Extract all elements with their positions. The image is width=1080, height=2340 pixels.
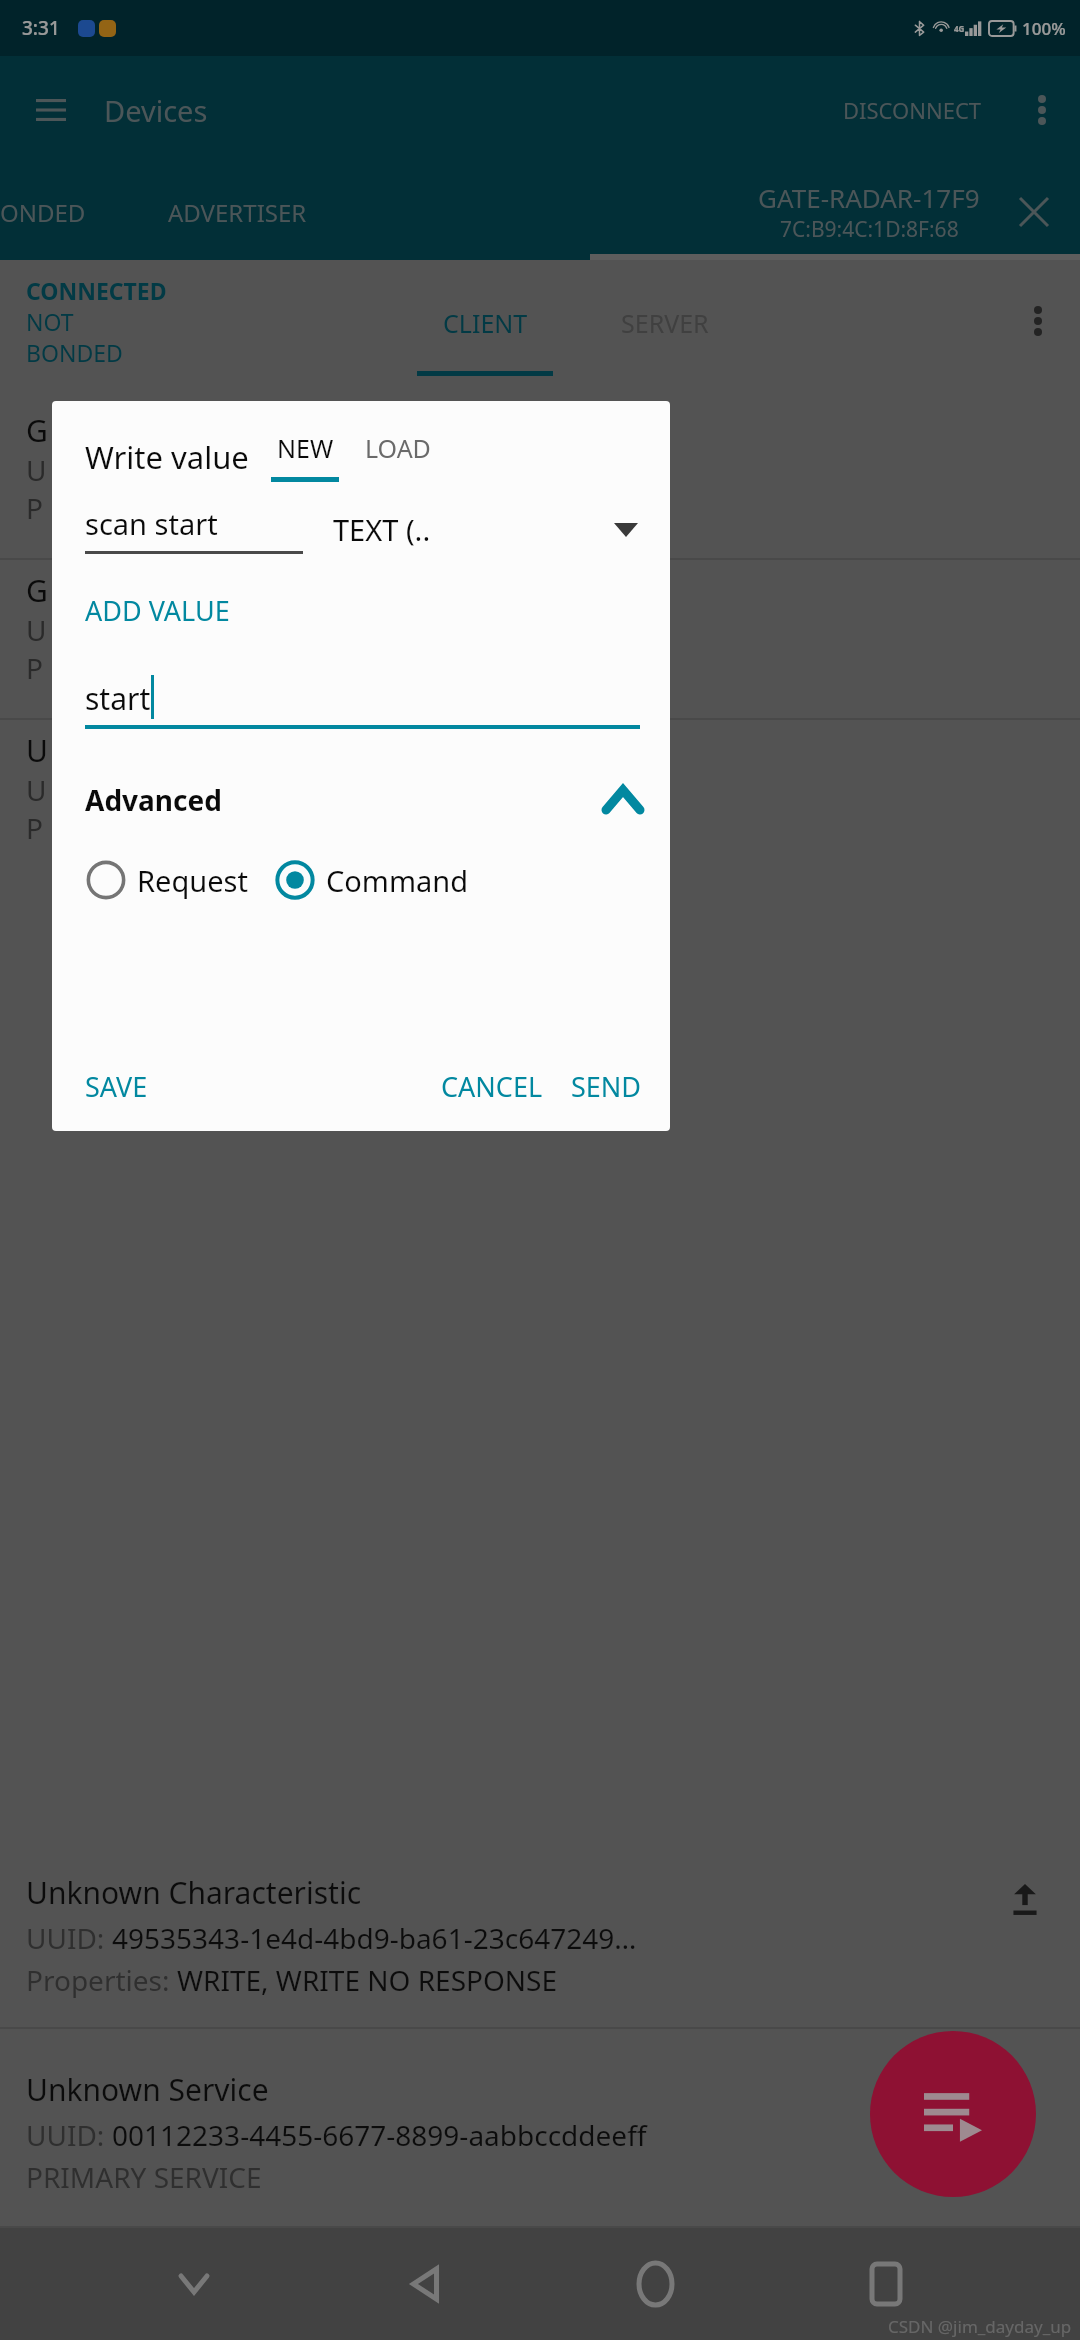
staticText: Request	[137, 861, 248, 900]
button[interactable]: CANCEL	[441, 1068, 543, 1105]
staticText: CONNECTED	[26, 275, 167, 306]
button[interactable]: Request	[85, 859, 248, 901]
staticText: PRIMARY SERVICE	[26, 2158, 262, 2196]
staticText: Advanced	[85, 781, 222, 819]
staticText: UUID:	[26, 2116, 112, 2154]
staticText: 4G	[954, 23, 965, 34]
staticText: Unknown Characteristic	[26, 1872, 362, 1913]
button[interactable]: Open navigation menu	[22, 81, 80, 139]
staticText: 00112233-4455-6677-8899-aabbccddeeff	[112, 2116, 647, 2154]
staticText: NOT	[26, 306, 74, 337]
staticText: U	[26, 451, 47, 489]
button[interactable]: TEXT (..	[333, 510, 642, 549]
staticText: scan start	[85, 504, 218, 543]
staticText: U	[26, 611, 47, 649]
staticText: CLIENT	[443, 306, 528, 340]
staticText: Unknown Service	[26, 2069, 269, 2110]
staticText: ADD VALUE	[85, 592, 230, 629]
staticText: TEXT (..	[333, 510, 431, 549]
staticText: SAVE	[85, 1068, 148, 1105]
staticText: U	[26, 730, 48, 771]
staticText: SEND	[571, 1068, 642, 1105]
button[interactable]: Command	[274, 859, 469, 901]
staticText: WRITE, WRITE NO RESPONSE	[177, 1961, 558, 1999]
staticText: SERVER	[621, 306, 709, 340]
button[interactable]: Characteristic options	[1010, 293, 1066, 349]
button[interactable]: scan start	[85, 504, 303, 554]
button[interactable]: NEW	[271, 431, 339, 482]
staticText: Command	[326, 861, 469, 900]
button[interactable]: DISCONNECT	[837, 89, 988, 131]
staticText: P	[26, 649, 43, 687]
button[interactable]: More options	[1014, 82, 1070, 138]
staticText: P	[26, 809, 43, 847]
staticText: UUID:	[26, 1919, 112, 1957]
button[interactable]: Hide keyboard	[158, 2248, 230, 2320]
staticText: Properties:	[26, 1961, 177, 1999]
button[interactable]: SAVE	[85, 1068, 148, 1105]
staticText: G	[26, 570, 48, 611]
staticText: ADVERTISER	[168, 196, 307, 229]
staticText: Devices	[104, 91, 208, 130]
staticText: G	[26, 410, 48, 451]
staticText: LOAD	[365, 431, 431, 465]
staticText: BONDED	[26, 337, 123, 368]
staticText: NEW	[277, 431, 334, 465]
staticText: 100%	[1022, 17, 1066, 40]
staticText: ONDED	[0, 196, 86, 229]
button[interactable]: Write characteristic	[996, 1872, 1054, 1930]
staticText: DISCONNECT	[843, 95, 982, 125]
button[interactable]: ADD VALUE	[85, 592, 230, 629]
staticText: CANCEL	[441, 1068, 543, 1105]
staticText: U	[26, 771, 47, 809]
button[interactable]: Send log	[870, 2031, 1036, 2197]
staticText: 49535343-1e4d-4bd9-ba61-23c647249…	[112, 1919, 637, 1957]
staticText: start	[85, 678, 151, 719]
button[interactable]: Back	[389, 2248, 461, 2320]
button[interactable]: Advanced	[85, 781, 640, 819]
button[interactable]: SEND	[571, 1068, 642, 1105]
button[interactable]: LOAD	[365, 431, 431, 482]
staticText: GATE-RADAR-17F9	[758, 180, 980, 215]
staticText: 3:31	[22, 15, 60, 41]
button[interactable]: Close device tab	[1006, 184, 1062, 240]
staticText: P	[26, 489, 43, 527]
staticText: 7C:B9:4C:1D:8F:68	[780, 215, 959, 244]
staticText: CSDN @jim_dayday_up	[888, 2315, 1072, 2338]
button[interactable]: Home	[619, 2248, 691, 2320]
staticText: Write value	[85, 436, 249, 478]
button[interactable]: Recent apps	[850, 2248, 922, 2320]
